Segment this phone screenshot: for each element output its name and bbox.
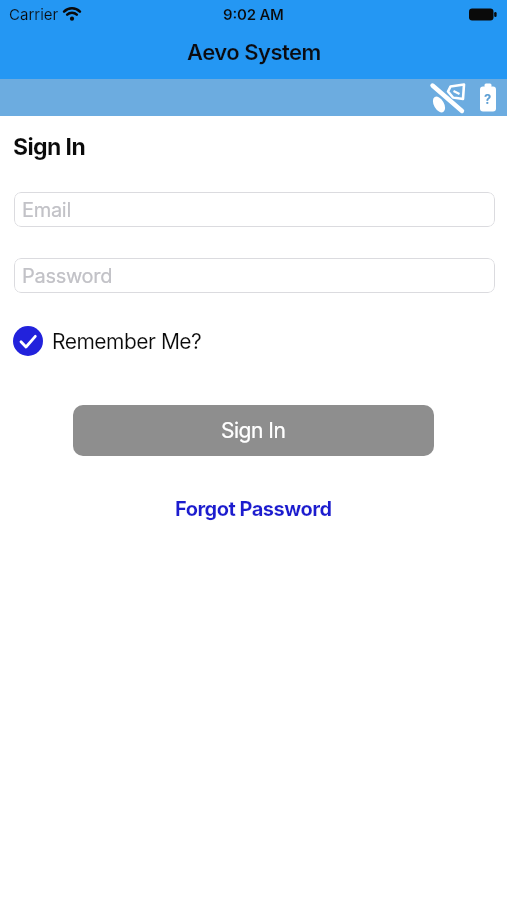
staticText: Sign In (221, 418, 286, 443)
staticText: Sign In (13, 133, 86, 161)
button[interactable]: Sign In (73, 405, 434, 456)
staticText: Carrier (9, 5, 59, 23)
staticText: ? (484, 91, 492, 107)
staticText: Password (22, 264, 113, 288)
staticText: Remember Me? (52, 329, 202, 354)
staticText: Email (22, 198, 71, 222)
button[interactable] (429, 82, 465, 113)
staticText: 9:02 AM (223, 5, 284, 23)
button[interactable]: Email (14, 192, 495, 227)
staticText: Aevo System (187, 39, 321, 66)
button[interactable]: Password (14, 258, 495, 293)
button[interactable]: Forgot Password (175, 497, 332, 521)
button[interactable]: Remember Me? (13, 326, 202, 356)
button[interactable]: ? (478, 83, 498, 113)
